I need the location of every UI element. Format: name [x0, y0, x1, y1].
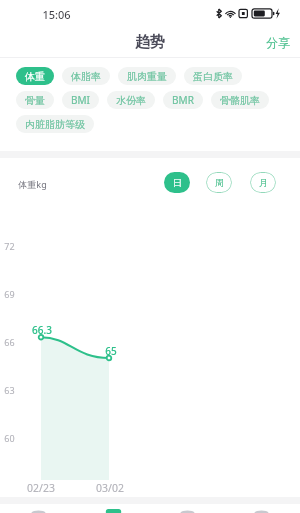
staticText: 趋势: [135, 33, 165, 52]
button[interactable]: BMR: [163, 91, 203, 109]
staticText: 分享: [266, 35, 290, 50]
button[interactable]: 肌肉重量: [118, 67, 176, 85]
button[interactable]: 周: [206, 172, 232, 193]
button[interactable]: 月: [250, 172, 276, 193]
staticText: 体重kg: [18, 178, 47, 190]
staticText: 月: [259, 177, 268, 188]
button[interactable]: BMI: [62, 91, 99, 109]
button[interactable]: 首页: [8, 504, 68, 513]
staticText: 02/23: [27, 481, 55, 495]
staticText: 66.3: [32, 323, 52, 337]
button[interactable]: 蛋白质率: [184, 67, 242, 85]
staticText: 骨量: [25, 94, 45, 107]
staticText: 63: [4, 384, 15, 396]
staticText: 03/02: [96, 481, 124, 495]
staticText: 体脂率: [71, 70, 101, 83]
button[interactable]: 日: [164, 172, 190, 193]
button[interactable]: 趋势: [83, 504, 143, 513]
staticText: 69: [4, 288, 15, 300]
staticText: 60: [4, 432, 15, 444]
staticText: 体重: [25, 70, 45, 83]
staticText: 骨骼肌率: [220, 94, 260, 107]
button[interactable]: 骨骼肌率: [211, 91, 269, 109]
staticText: 肌肉重量: [127, 70, 167, 83]
button[interactable]: 设备: [157, 504, 217, 513]
staticText: BMR: [172, 93, 194, 107]
button[interactable]: 骨量: [16, 91, 54, 109]
button[interactable]: 水份率: [107, 91, 155, 109]
staticText: 66: [4, 336, 15, 348]
staticText: BMI: [71, 93, 90, 107]
staticText: 蛋白质率: [193, 70, 233, 83]
staticText: 水份率: [116, 94, 146, 107]
button[interactable]: 体重: [16, 67, 54, 85]
button[interactable]: 分享: [256, 29, 300, 56]
staticText: 15:06: [42, 7, 71, 22]
staticText: 65: [105, 344, 117, 358]
staticText: 日: [173, 177, 182, 188]
staticText: 内脏脂肪等级: [25, 118, 85, 131]
button[interactable]: 内脏脂肪等级: [16, 115, 94, 133]
button[interactable]: 我的: [231, 504, 291, 513]
staticText: 72: [4, 240, 15, 252]
button[interactable]: 体脂率: [62, 67, 110, 85]
staticText: 周: [215, 177, 224, 188]
